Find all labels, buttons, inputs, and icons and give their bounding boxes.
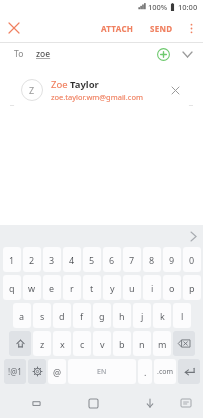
staticText: d [59, 310, 65, 322]
button[interactable]: r [63, 275, 81, 300]
button[interactable]: 4 [63, 247, 81, 272]
button[interactable]: k [153, 303, 171, 328]
button[interactable]: d [53, 303, 71, 328]
button[interactable]: t [83, 275, 101, 300]
staticText: l [181, 310, 184, 322]
button[interactable]: 5 [83, 247, 101, 272]
button[interactable]: y [103, 275, 121, 300]
button[interactable]: n [133, 331, 151, 356]
button[interactable]: Expand [177, 44, 197, 64]
button[interactable]: x [53, 331, 71, 356]
staticText: @ [53, 366, 62, 378]
staticText: a [19, 310, 25, 322]
button[interactable]: Remove [164, 79, 186, 101]
staticText: 3 [49, 254, 55, 266]
button[interactable]: j [133, 303, 151, 328]
staticText: Zoe Taylor [51, 78, 99, 91]
button[interactable]: Close [0, 14, 28, 42]
staticText: !@1 [8, 366, 22, 377]
staticText: zoe [36, 48, 51, 60]
staticText: t [90, 282, 94, 294]
staticText: 2 [29, 254, 35, 266]
button[interactable]: 3 [43, 247, 61, 272]
button[interactable]: Add recipient [153, 44, 173, 64]
button[interactable]: z [33, 331, 51, 356]
button[interactable]: . [138, 359, 152, 384]
button[interactable]: More options [179, 16, 203, 40]
button[interactable]: !@1 [4, 359, 26, 384]
staticText: 9 [169, 254, 175, 266]
button[interactable]: Z [14, 72, 189, 108]
staticText: y [110, 282, 115, 294]
staticText: f [80, 310, 84, 322]
button[interactable]: Shift [9, 331, 31, 356]
button[interactable]: l [173, 303, 191, 328]
staticText: n [139, 338, 145, 350]
staticText: Z [29, 84, 35, 96]
staticText: . [144, 366, 147, 378]
staticText: 8 [149, 254, 155, 266]
staticText: q [9, 282, 15, 294]
staticText: o [169, 282, 175, 294]
staticText: 10:00 [178, 2, 198, 12]
button[interactable]: v [93, 331, 111, 356]
button[interactable]: Home [78, 388, 108, 418]
button[interactable]: .com [154, 359, 176, 384]
staticText: s [40, 310, 45, 322]
button[interactable]: 1 [3, 247, 21, 272]
button[interactable]: Keyboard [173, 390, 199, 416]
button[interactable]: u [123, 275, 141, 300]
staticText: z [40, 338, 45, 350]
staticText: zoe.taylor.wm@gmail.com [51, 92, 143, 102]
staticText: u [129, 282, 135, 294]
button[interactable]: g [93, 303, 111, 328]
button[interactable]: 8 [143, 247, 161, 272]
staticText: v [100, 338, 105, 350]
button[interactable]: Recents [21, 388, 51, 418]
button[interactable]: p [183, 275, 201, 300]
staticText: r [70, 282, 74, 294]
button[interactable]: c [73, 331, 91, 356]
button[interactable]: Settings [28, 359, 46, 384]
staticText: 7 [129, 254, 135, 266]
button[interactable]: SEND [144, 18, 179, 39]
button[interactable]: e [43, 275, 61, 300]
button[interactable]: w [23, 275, 41, 300]
staticText: i [151, 282, 154, 294]
button[interactable]: 2 [23, 247, 41, 272]
button[interactable]: b [113, 331, 131, 356]
staticText: g [99, 310, 105, 322]
button[interactable]: s [33, 303, 51, 328]
button[interactable]: a [13, 303, 31, 328]
button[interactable]: 9 [163, 247, 181, 272]
staticText: 6 [109, 254, 115, 266]
button[interactable]: q [3, 275, 21, 300]
staticText: 4 [69, 254, 75, 266]
button[interactable]: More suggestions [183, 226, 203, 246]
button[interactable]: Hide keyboard [135, 388, 165, 418]
button[interactable]: f [73, 303, 91, 328]
staticText: k [160, 310, 165, 322]
button[interactable]: m [153, 331, 171, 356]
button[interactable]: ATTACH [95, 18, 140, 39]
staticText: 0 [189, 254, 195, 266]
button[interactable]: @ [48, 359, 66, 384]
staticText: To [14, 48, 24, 60]
staticText: b [119, 338, 125, 350]
button[interactable]: 7 [123, 247, 141, 272]
button[interactable]: 6 [103, 247, 121, 272]
staticText: 100% [148, 2, 168, 12]
button[interactable]: i [143, 275, 161, 300]
staticText: .com [157, 367, 174, 377]
staticText: h [119, 310, 125, 322]
staticText: Subject [14, 87, 49, 101]
button[interactable]: 0 [183, 247, 201, 272]
staticText: 1 [9, 254, 15, 266]
button[interactable]: o [163, 275, 181, 300]
button[interactable]: Backspace [173, 331, 195, 356]
staticText: m [158, 338, 167, 350]
staticText: e [49, 282, 55, 294]
button[interactable]: EN [68, 359, 136, 384]
button[interactable]: h [113, 303, 131, 328]
button[interactable]: Enter [178, 359, 200, 384]
